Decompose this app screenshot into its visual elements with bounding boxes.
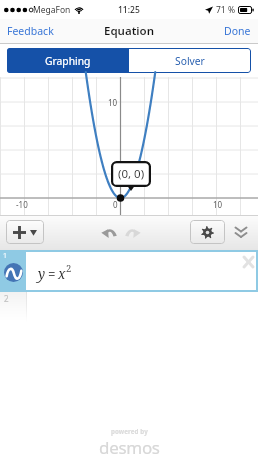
button[interactable]: 1 xyxy=(0,250,258,292)
staticText: powered by xyxy=(111,427,148,435)
staticText: 2 xyxy=(4,293,9,304)
staticText: desmos xyxy=(99,436,160,459)
button[interactable]: Collapse keypad xyxy=(231,220,251,244)
staticText: 11:25 xyxy=(118,4,140,16)
staticText: Graphing xyxy=(45,54,91,68)
button[interactable]: Solver xyxy=(129,48,251,73)
staticText: 10 xyxy=(108,97,118,108)
staticText: x xyxy=(58,265,66,283)
staticText: Feedback xyxy=(7,24,54,38)
staticText: Done xyxy=(224,24,251,38)
button[interactable]: Settings xyxy=(190,220,225,244)
staticText: 1 xyxy=(3,251,8,261)
staticText: -10 xyxy=(16,199,28,210)
button[interactable]: Add expression xyxy=(6,220,44,244)
button[interactable]: 2 xyxy=(0,292,258,322)
staticText: 10 xyxy=(213,199,223,210)
staticText: Equation xyxy=(104,23,155,39)
staticText: 71 % xyxy=(216,4,235,16)
button[interactable]: Graphing xyxy=(7,48,129,73)
button[interactable]: Done xyxy=(224,24,251,38)
staticText: y xyxy=(38,265,46,283)
staticText: (0, 0) xyxy=(118,166,145,182)
button[interactable]: Feedback xyxy=(7,24,54,38)
button[interactable]: Redo xyxy=(121,221,144,244)
staticText: Solver xyxy=(175,54,205,68)
button[interactable]: Undo xyxy=(97,221,120,244)
staticText: 0 xyxy=(113,199,118,210)
staticText: MegaFon xyxy=(33,4,71,16)
staticText: 2 xyxy=(66,262,72,275)
button[interactable]: Delete expression xyxy=(238,252,258,272)
staticText: = xyxy=(48,265,56,283)
